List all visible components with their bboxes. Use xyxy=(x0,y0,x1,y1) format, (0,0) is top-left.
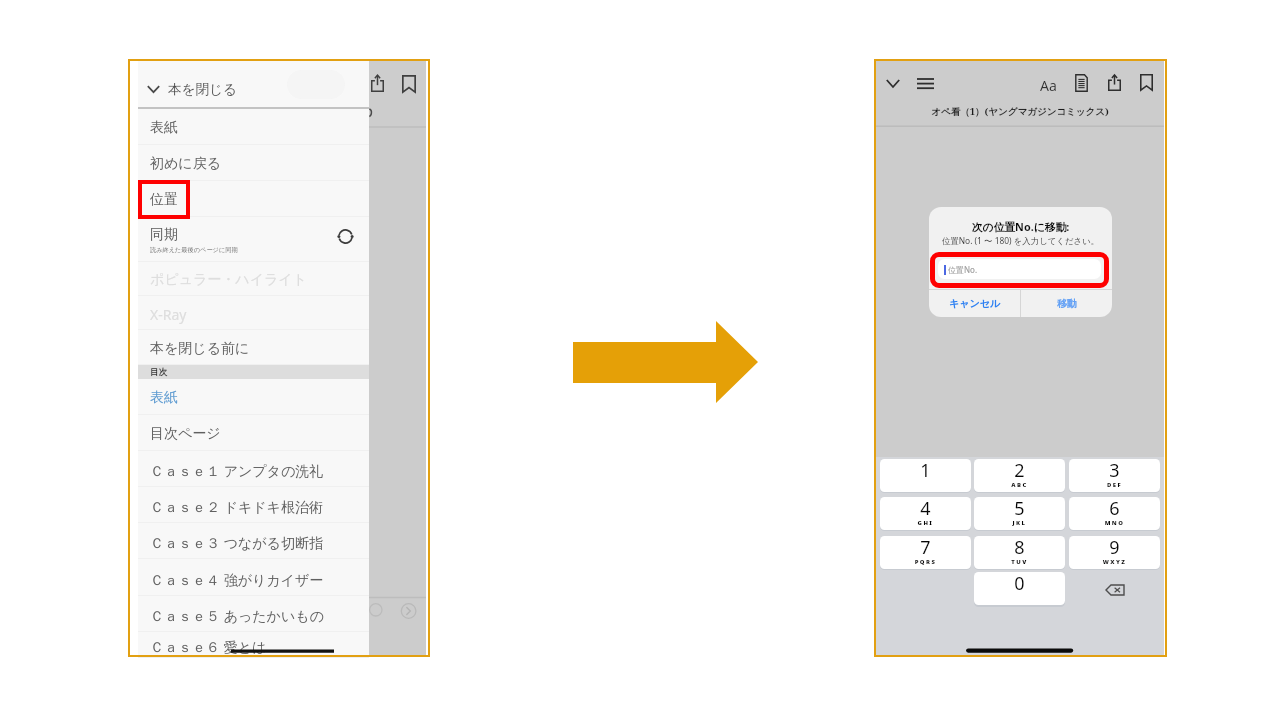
button[interactable]: Collapse xyxy=(886,79,901,88)
button[interactable]: ポピュラー・ハイライト xyxy=(138,261,369,296)
button[interactable]: 1 xyxy=(880,459,971,492)
staticText: 次の位置No.に移動: xyxy=(929,219,1112,234)
button[interactable]: 9 xyxy=(1069,536,1160,569)
staticText: Ｃａｓｅ３ つながる切断指 xyxy=(150,533,323,552)
button[interactable]: 2 xyxy=(974,459,1065,492)
button[interactable]: 表紙 xyxy=(138,108,369,145)
button[interactable]: 位置No. xyxy=(938,259,1101,279)
staticText: DEF xyxy=(1069,481,1160,489)
staticText: Ｃａｓｅ６ 愛とは xyxy=(150,637,267,656)
button[interactable]: 移動 xyxy=(1021,290,1112,317)
staticText: Ｃａｓｅ２ ドキドキ根治術 xyxy=(150,497,323,516)
button[interactable]: Share xyxy=(1108,74,1121,91)
button[interactable]: キャンセル xyxy=(929,290,1020,317)
button[interactable]: 8 xyxy=(974,536,1065,569)
staticText: 目次ページ xyxy=(150,425,221,443)
button[interactable]: 同期 xyxy=(138,217,369,262)
button[interactable]: 6 xyxy=(1069,497,1160,530)
button[interactable]: Backspace xyxy=(1069,572,1160,607)
staticText: 3 xyxy=(1069,459,1160,483)
staticText: TUV xyxy=(974,558,1065,566)
staticText: 7 xyxy=(880,536,971,560)
button[interactable]: Ｃａｓｅ３ つながる切断指 xyxy=(138,523,369,559)
staticText: JKL xyxy=(974,519,1065,527)
button[interactable]: Ｃａｓｅ４ 強がりカイザー xyxy=(138,560,369,596)
staticText: ポピュラー・ハイライト xyxy=(150,271,307,289)
button[interactable]: 0 xyxy=(974,572,1065,605)
staticText: 目次 xyxy=(150,367,167,378)
staticText: 6 xyxy=(1069,497,1160,521)
staticText: 読み終えた最後のページに同期 xyxy=(150,246,238,254)
staticText: 2 xyxy=(974,459,1065,483)
staticText: MNO xyxy=(1069,519,1160,527)
button[interactable]: Share xyxy=(371,74,384,92)
staticText: 同期 xyxy=(150,226,178,244)
button[interactable]: Bookmark xyxy=(402,75,416,93)
staticText: 5 xyxy=(974,497,1065,521)
staticText: X-Ray xyxy=(150,305,187,324)
staticText: 表紙 xyxy=(150,389,178,407)
button[interactable]: 位置 xyxy=(138,181,369,217)
staticText: GHI xyxy=(880,519,971,527)
button[interactable]: 4 xyxy=(880,497,971,530)
staticText: 本を閉じる前に xyxy=(150,340,250,358)
staticText: 8 xyxy=(974,536,1065,560)
button[interactable]: 7 xyxy=(880,536,971,569)
button[interactable]: Ｃａｓｅ６ 愛とは xyxy=(138,632,369,658)
button[interactable]: 本を閉じる前に xyxy=(138,331,369,365)
staticText: 1 xyxy=(880,459,971,483)
staticText: 4 xyxy=(880,497,971,521)
staticText: 移動 xyxy=(1057,297,1077,310)
staticText: WXYZ xyxy=(1069,558,1160,566)
staticText: 位置No. (1 〜 180) を入力してください。 xyxy=(929,235,1112,246)
staticText: 位置 xyxy=(150,191,178,209)
staticText: キャンセル xyxy=(949,297,1001,310)
staticText: Ｃａｓｅ１ アンプタの洗礼 xyxy=(150,461,324,480)
button[interactable]: 目次ページ xyxy=(138,415,369,451)
staticText: 位置No. xyxy=(948,264,978,275)
staticText: オペ看（1）(ヤングマガジンコミックス) xyxy=(876,105,1164,118)
button[interactable]: 表紙 xyxy=(138,379,369,415)
button[interactable]: Bookmark xyxy=(1140,74,1153,91)
button[interactable]: X-Ray xyxy=(138,296,369,330)
button[interactable]: 5 xyxy=(974,497,1065,530)
staticText: Aa xyxy=(1040,76,1057,95)
button[interactable]: Aa xyxy=(1040,76,1057,95)
staticText: 9 xyxy=(1069,536,1160,560)
button[interactable]: Menu xyxy=(917,78,934,89)
staticText: ABC xyxy=(974,481,1065,489)
staticText: Ｃａｓｅ５ あったかいもの xyxy=(150,606,324,625)
staticText: 0 xyxy=(974,572,1065,596)
staticText: 表紙 xyxy=(150,119,178,137)
button[interactable]: 本を閉じる xyxy=(138,61,369,108)
staticText: 初めに戻る xyxy=(150,155,221,173)
staticText: Ｃａｓｅ４ 強がりカイザー xyxy=(150,570,324,589)
staticText: PQRS xyxy=(880,558,971,566)
button[interactable]: Ｃａｓｅ１ アンプタの洗礼 xyxy=(138,451,369,487)
button[interactable]: Contents xyxy=(1075,74,1088,92)
button[interactable]: Ｃａｓｅ２ ドキドキ根治術 xyxy=(138,487,369,523)
staticText: 本を閉じる xyxy=(168,81,237,98)
button[interactable]: 初めに戻る xyxy=(138,145,369,181)
button[interactable]: 3 xyxy=(1069,459,1160,492)
button[interactable]: Ｃａｓｅ５ あったかいもの xyxy=(138,596,369,632)
